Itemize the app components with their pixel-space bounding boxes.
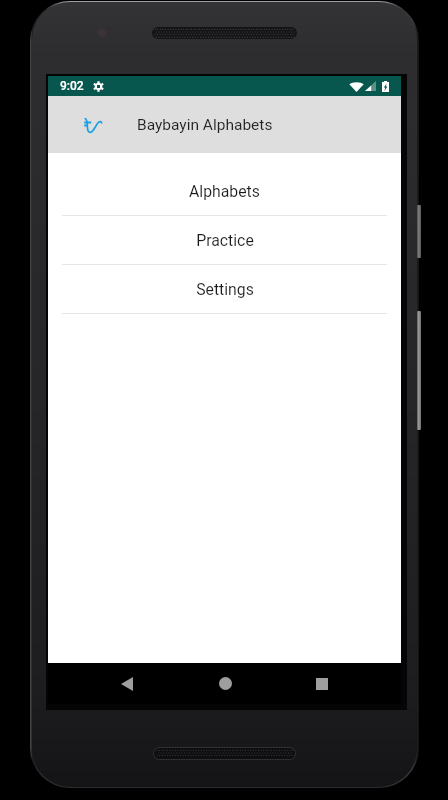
button[interactable]: Settings xyxy=(48,265,401,314)
button[interactable]: Home xyxy=(201,663,249,704)
button[interactable]: Recents xyxy=(298,663,346,704)
staticText: 9:02 xyxy=(60,79,84,93)
button[interactable]: Back xyxy=(103,663,151,704)
staticText: Settings xyxy=(196,280,254,299)
staticText: Baybayin Alphabets xyxy=(137,116,273,134)
button[interactable]: Baybayin logo xyxy=(82,113,104,137)
button[interactable]: Alphabets xyxy=(48,167,401,216)
staticText: Alphabets xyxy=(189,182,260,201)
staticText: Practice xyxy=(196,231,254,250)
button[interactable]: Practice xyxy=(48,216,401,265)
